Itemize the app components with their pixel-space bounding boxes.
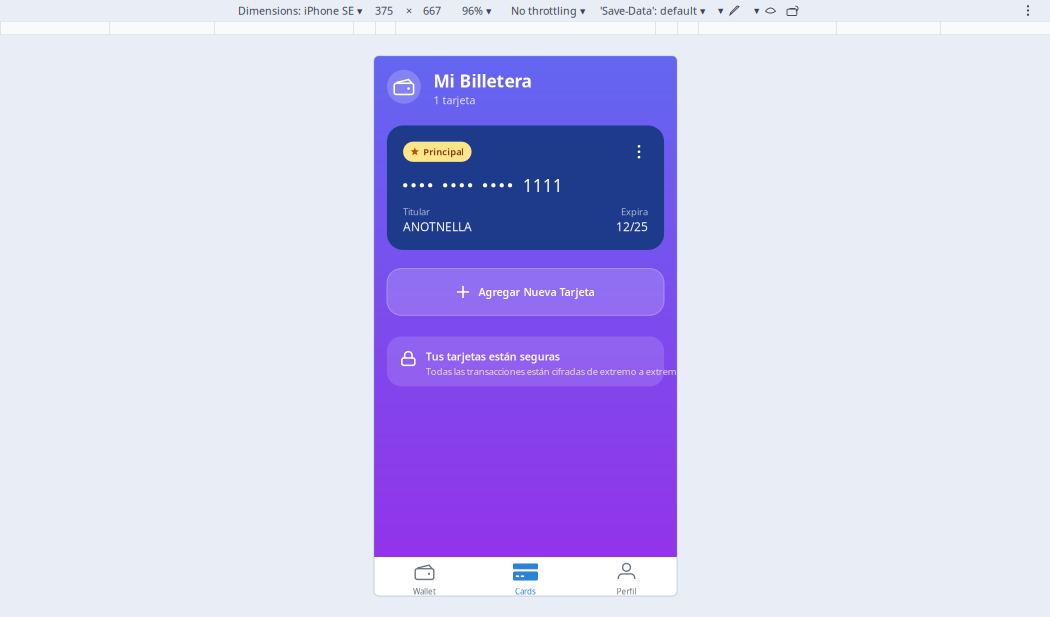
staticText: 375 [375,3,393,18]
button[interactable]: Rotate [786,3,802,17]
button[interactable]: Sensors [754,4,759,16]
button[interactable]: Show media queries [765,3,776,17]
staticText: Todas las transacciones están cifradas d… [426,365,683,377]
staticText: × [406,3,412,18]
staticText: No throttling ▾ [511,3,585,18]
staticText: Dimensions: iPhone SE ▾ [238,3,362,18]
staticText: Principal [423,146,464,158]
button[interactable]: Dimensions: iPhone SE ▾ [238,3,362,18]
button[interactable]: 96% ▾ [462,3,491,18]
staticText: 'Save-Data': default ▾ [600,3,705,18]
staticText: ▾ [754,4,759,16]
button[interactable]: No throttling ▾ [511,3,585,18]
button[interactable]: 'Save-Data': default ▾ [600,3,705,18]
staticText: Wallet [413,586,436,597]
button[interactable]: Opciones de la tarjeta [630,142,648,162]
staticText: 667 [423,3,441,18]
button[interactable]: Edit user agent [729,3,740,17]
button[interactable]: Device pixel ratio [718,4,723,16]
staticText: Perfil [616,586,636,597]
button[interactable]: Cards [475,557,576,596]
staticText: 1111 [523,174,563,197]
staticText: Titular [403,205,430,218]
button[interactable]: Perfil [576,557,677,596]
staticText: 12/25 [616,219,648,235]
staticText: 96% ▾ [462,3,491,18]
staticText: Expira [621,205,648,218]
staticText: 1 tarjeta [433,93,475,107]
button[interactable]: More options [1017,0,1039,21]
staticText: Mi Billetera [433,69,531,92]
staticText: Agregar Nueva Tarjeta [478,285,594,299]
staticText: ANOTNELLA [403,219,472,235]
button[interactable]: Agregar Nueva Tarjeta [387,268,664,315]
button[interactable]: Wallet [374,557,475,596]
staticText: Tus tarjetas están seguras [426,349,560,363]
staticText: Cards [515,586,536,597]
staticText: ▾ [718,4,723,16]
